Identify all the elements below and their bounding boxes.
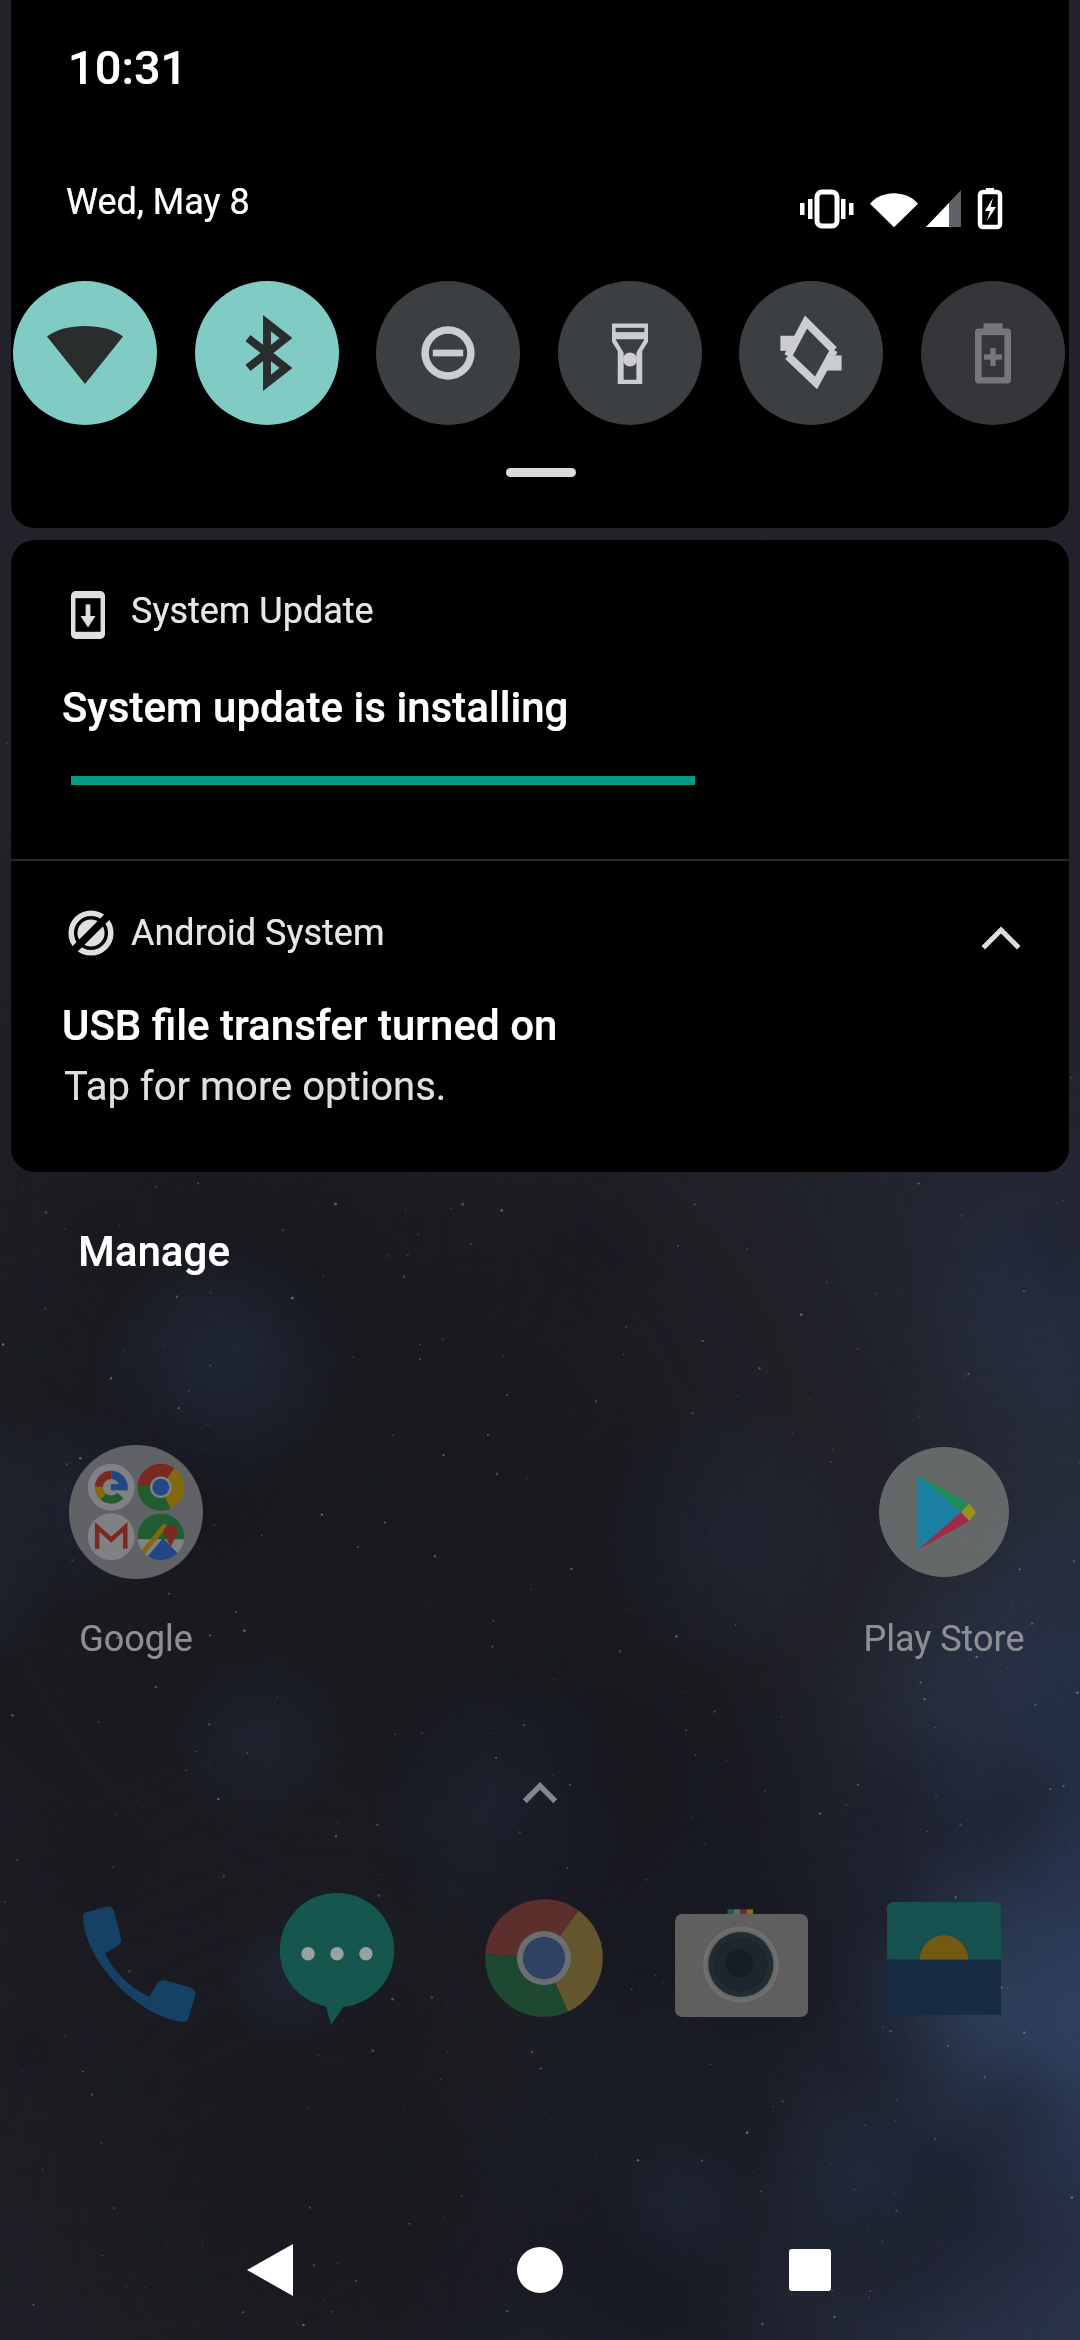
staticText: 10:31 <box>68 40 188 95</box>
button[interactable]: Play Store <box>879 1447 1009 1577</box>
staticText: USB file transfer turned on <box>62 1001 558 1050</box>
button[interactable]: Manage <box>78 1227 230 1276</box>
staticText: Play Store <box>808 1618 1080 1660</box>
staticText: Android System <box>131 912 385 954</box>
button[interactable]: Gallery <box>887 1890 1001 2004</box>
button[interactable]: Chrome <box>484 1898 604 2018</box>
button[interactable]: Recent apps <box>740 2215 880 2325</box>
button[interactable]: Collapse notification <box>961 903 1041 973</box>
button[interactable]: Auto rotate <box>739 281 883 425</box>
staticText: System Update <box>131 590 374 632</box>
button[interactable]: Wi-Fi <box>13 281 157 425</box>
button[interactable]: Flashlight <box>558 281 702 425</box>
button[interactable]: Messages <box>278 1893 396 2011</box>
staticText: Google <box>0 1618 272 1660</box>
button[interactable]: Battery saver <box>921 281 1065 425</box>
staticText: Tap for more options. <box>64 1063 447 1110</box>
button[interactable]: Phone <box>75 1899 191 2015</box>
button[interactable]: Google folder <box>69 1445 203 1579</box>
button[interactable]: Open app drawer <box>495 1765 585 1835</box>
button[interactable]: Back <box>200 2215 340 2325</box>
button[interactable]: Android System <box>11 861 1069 1172</box>
button[interactable]: Do not disturb <box>376 281 520 425</box>
staticText: Wed, May 8 <box>66 181 250 223</box>
button[interactable]: Bluetooth <box>195 281 339 425</box>
button[interactable]: Expand quick settings <box>506 468 576 477</box>
button[interactable]: System Update <box>11 540 1069 859</box>
staticText: System update is installing <box>62 683 569 732</box>
button[interactable]: Camera <box>675 1894 808 2027</box>
button[interactable]: Home <box>470 2215 610 2325</box>
